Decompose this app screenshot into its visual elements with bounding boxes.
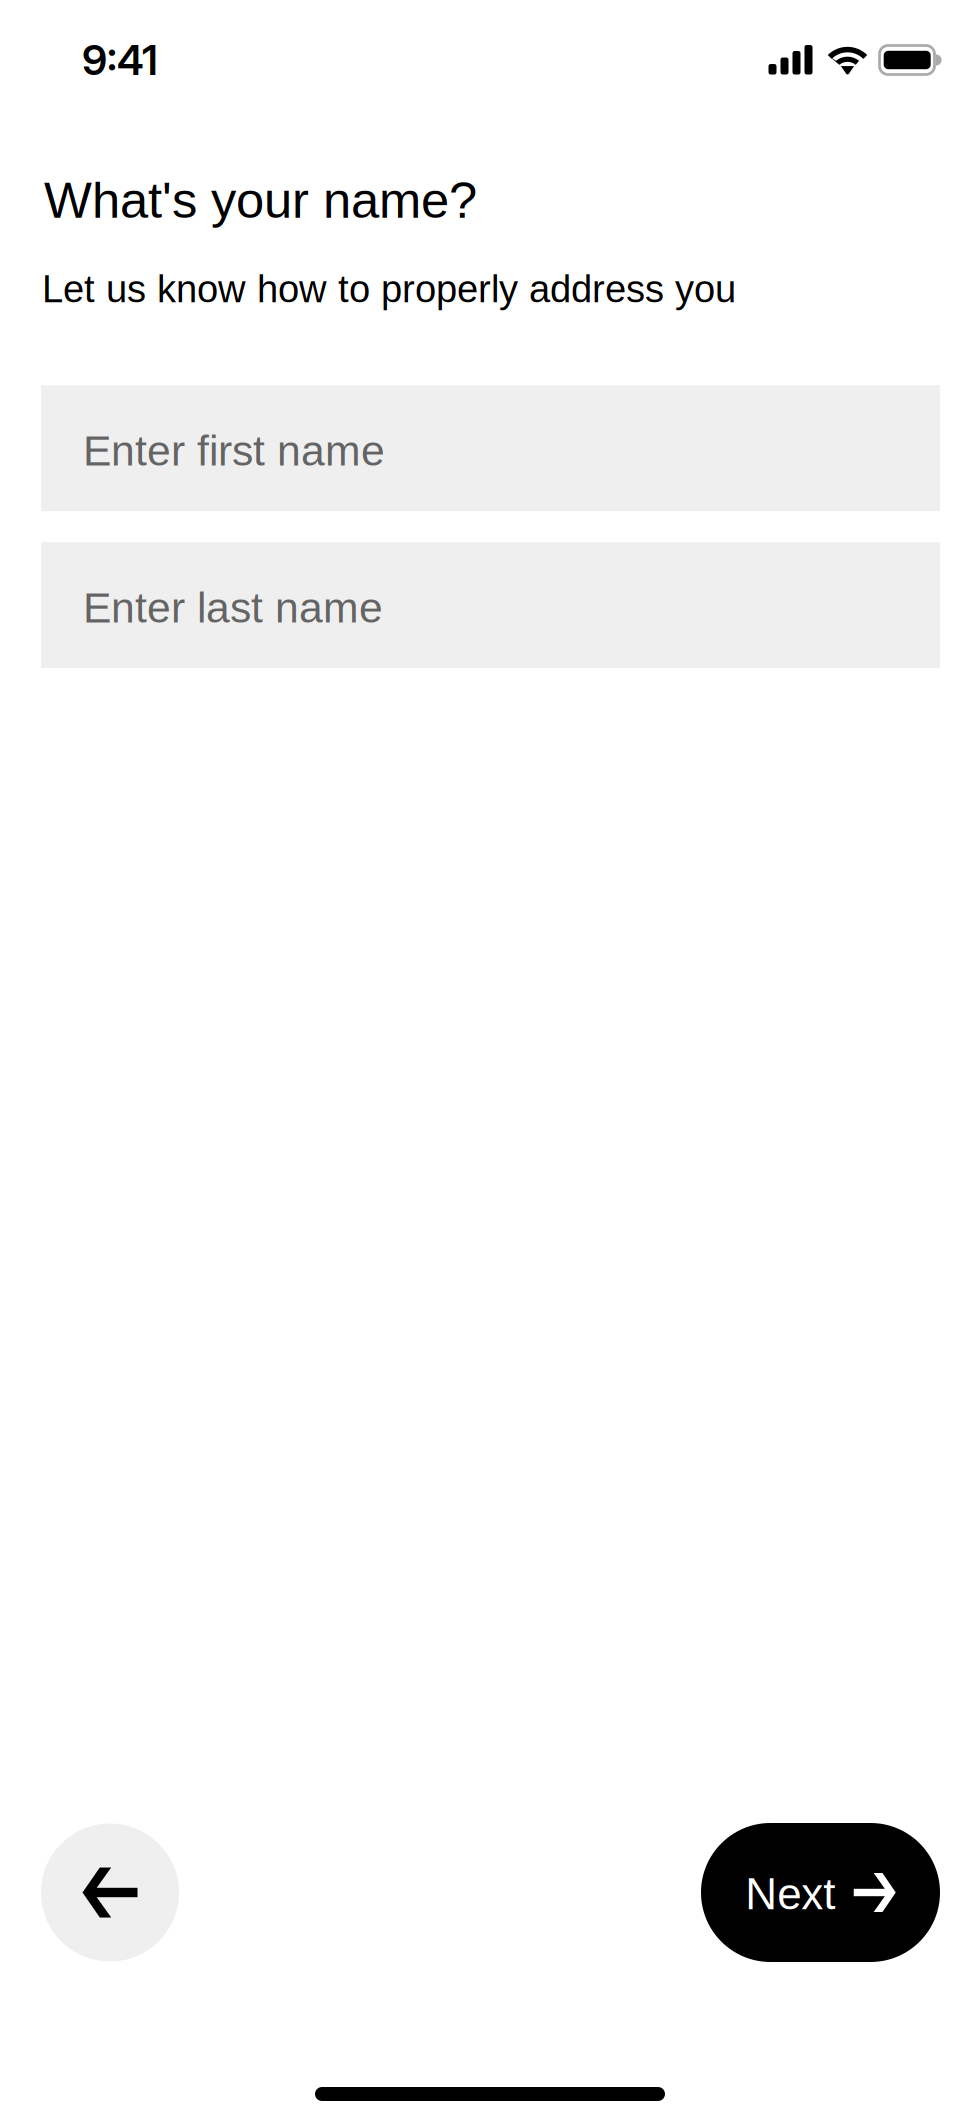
button[interactable]: Next: [701, 1823, 940, 1962]
staticText: What's your name?: [44, 172, 477, 229]
button[interactable]: Enter last name: [41, 542, 940, 668]
staticText: Let us know how to properly address you: [42, 268, 736, 310]
staticText: 9:41: [82, 35, 158, 85]
staticText: Next: [745, 1869, 835, 1919]
button[interactable]: Back: [41, 1823, 179, 1961]
staticText: Enter last name: [83, 584, 383, 632]
staticText: Enter first name: [83, 427, 385, 475]
button[interactable]: Enter first name: [41, 385, 940, 511]
